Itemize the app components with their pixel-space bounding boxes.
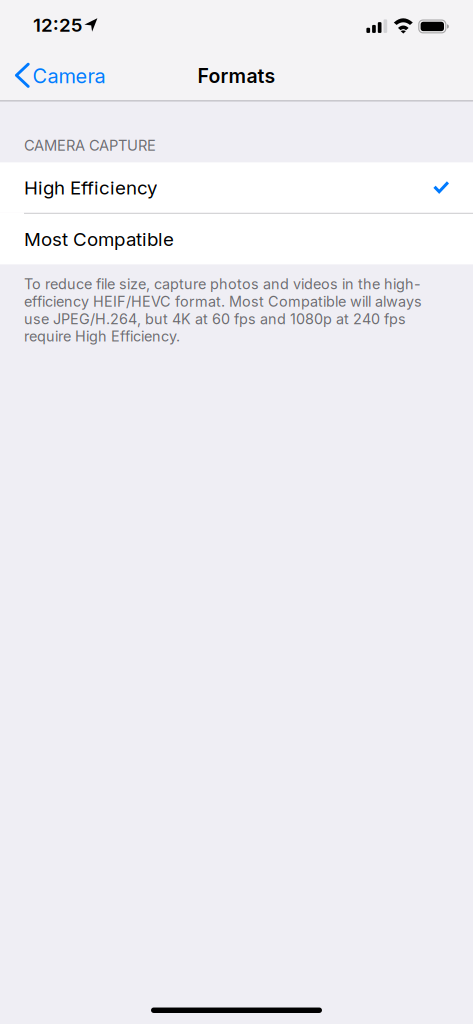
staticText: 12:25 xyxy=(33,14,82,36)
staticText: Formats xyxy=(197,64,275,88)
staticText: To reduce file size, capture photos and … xyxy=(24,275,422,345)
staticText: High Efficiency xyxy=(24,176,157,199)
button[interactable]: Most Compatible xyxy=(0,214,473,264)
staticText: Camera xyxy=(33,64,106,88)
staticText: Most Compatible xyxy=(24,228,174,250)
button[interactable]: Camera xyxy=(0,52,118,98)
button[interactable]: High Efficiency xyxy=(0,162,473,213)
staticText: CAMERA CAPTURE xyxy=(24,137,156,154)
